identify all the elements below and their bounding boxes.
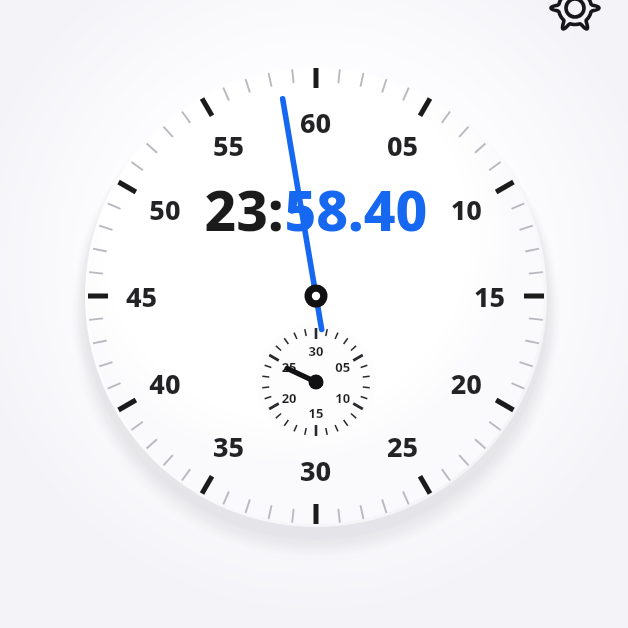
button[interactable]: Settings xyxy=(543,0,607,40)
